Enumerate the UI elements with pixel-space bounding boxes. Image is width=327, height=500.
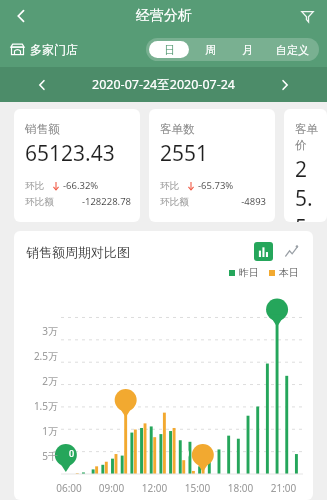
staticText: 21:00 [266, 481, 301, 495]
button[interactable]: 周 [192, 38, 229, 61]
staticText: -65.73% [198, 179, 234, 192]
staticText: 销售额 [25, 122, 60, 136]
staticText: 06:00 [52, 481, 86, 495]
staticText: 3万 [42, 324, 58, 338]
staticText: 09:00 [94, 481, 129, 495]
staticText: 15:00 [180, 481, 215, 495]
staticText: 周 [205, 43, 216, 57]
staticText: 5千 [42, 449, 58, 463]
staticText: 月 [242, 43, 253, 57]
staticText: 环比 [160, 180, 179, 192]
staticText: 0 [69, 447, 75, 459]
staticText: 销售额周期对比图 [26, 244, 254, 260]
staticText: 2万 [42, 374, 58, 388]
button[interactable]: 日 [149, 41, 189, 58]
staticText: 日 [164, 43, 175, 57]
button[interactable]: Line chart [282, 242, 301, 261]
staticText: 65123.43 [25, 139, 115, 168]
button[interactable]: 客单价 [284, 109, 327, 222]
staticText: 18:00 [223, 481, 258, 495]
button[interactable]: 销售额 [14, 109, 140, 222]
button[interactable]: Filter [293, 2, 321, 30]
staticText: 1万 [42, 424, 58, 438]
staticText: 0 [184, 447, 190, 459]
staticText: 经营分析 [136, 7, 192, 25]
staticText: 昨日 [239, 266, 259, 279]
staticText: 2020-07-24至2020-07-24 [92, 76, 236, 93]
staticText: 客单价 [295, 122, 318, 152]
staticText: 25.53 [295, 155, 318, 222]
button[interactable]: Bar chart [254, 242, 273, 261]
staticText: -128228.78 [54, 195, 131, 208]
staticText: 本日 [279, 266, 299, 279]
staticText: 1.5万 [33, 399, 58, 413]
button[interactable]: 多家门店 [10, 42, 78, 57]
staticText: 环比额 [160, 196, 189, 208]
button[interactable]: 月 [229, 38, 266, 61]
staticText: 环比 [25, 180, 44, 192]
button[interactable]: Next date [273, 73, 297, 97]
staticText: 自定义 [276, 43, 309, 57]
staticText: -66.32% [63, 179, 99, 192]
button[interactable]: Back [6, 1, 36, 31]
staticText: -4893 [189, 195, 266, 208]
button[interactable]: 客单数 [149, 109, 275, 222]
button[interactable]: Previous date [30, 73, 54, 97]
staticText: 2551 [160, 139, 209, 168]
staticText: 2.5万 [33, 349, 58, 363]
button[interactable]: 自定义 [266, 38, 319, 61]
staticText: 客单数 [160, 122, 195, 136]
staticText: 12:00 [137, 481, 172, 495]
staticText: 环比额 [25, 196, 54, 208]
staticText: 多家门店 [30, 42, 78, 57]
